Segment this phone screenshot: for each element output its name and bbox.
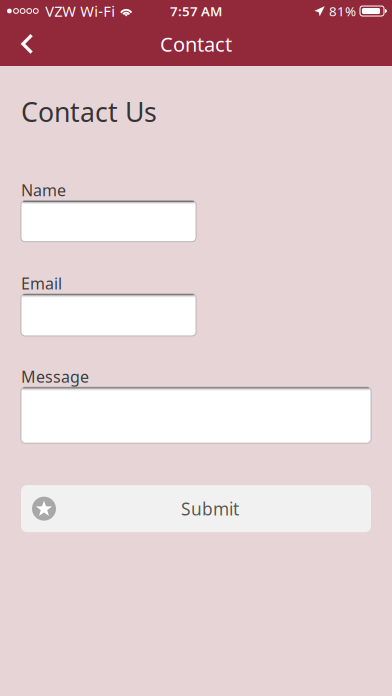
button[interactable]: Submit: [21, 485, 371, 532]
staticText: Contact: [160, 31, 232, 57]
staticText: Submit: [181, 497, 239, 520]
staticText: Name: [21, 179, 66, 201]
button[interactable]: Email: [21, 294, 196, 336]
staticText: 7:57 AM: [170, 2, 222, 20]
button[interactable]: Back: [0, 22, 46, 66]
staticText: VZW Wi-Fi: [45, 1, 115, 21]
staticText: Contact Us: [21, 94, 157, 129]
staticText: 81%: [329, 2, 356, 20]
button[interactable]: Message: [21, 387, 371, 443]
button[interactable]: Name: [21, 201, 196, 242]
staticText: Message: [21, 366, 89, 387]
staticText: Email: [21, 273, 62, 294]
